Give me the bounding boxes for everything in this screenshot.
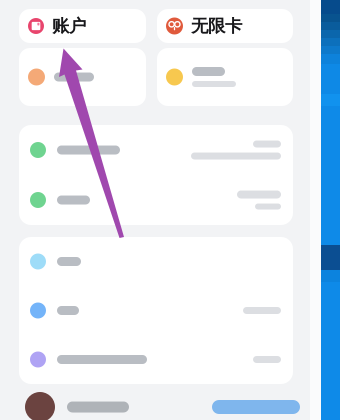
button[interactable] [19, 335, 293, 384]
staticText: 账户 [52, 15, 86, 37]
button[interactable]: 账户 [19, 9, 146, 43]
button[interactable] [19, 237, 293, 286]
button[interactable] [157, 48, 293, 106]
button[interactable] [19, 286, 293, 335]
button[interactable] [19, 48, 146, 106]
button[interactable]: 无限卡 [157, 9, 293, 43]
staticText: 无限卡 [191, 15, 242, 37]
button[interactable] [19, 175, 293, 225]
button[interactable] [19, 125, 293, 175]
